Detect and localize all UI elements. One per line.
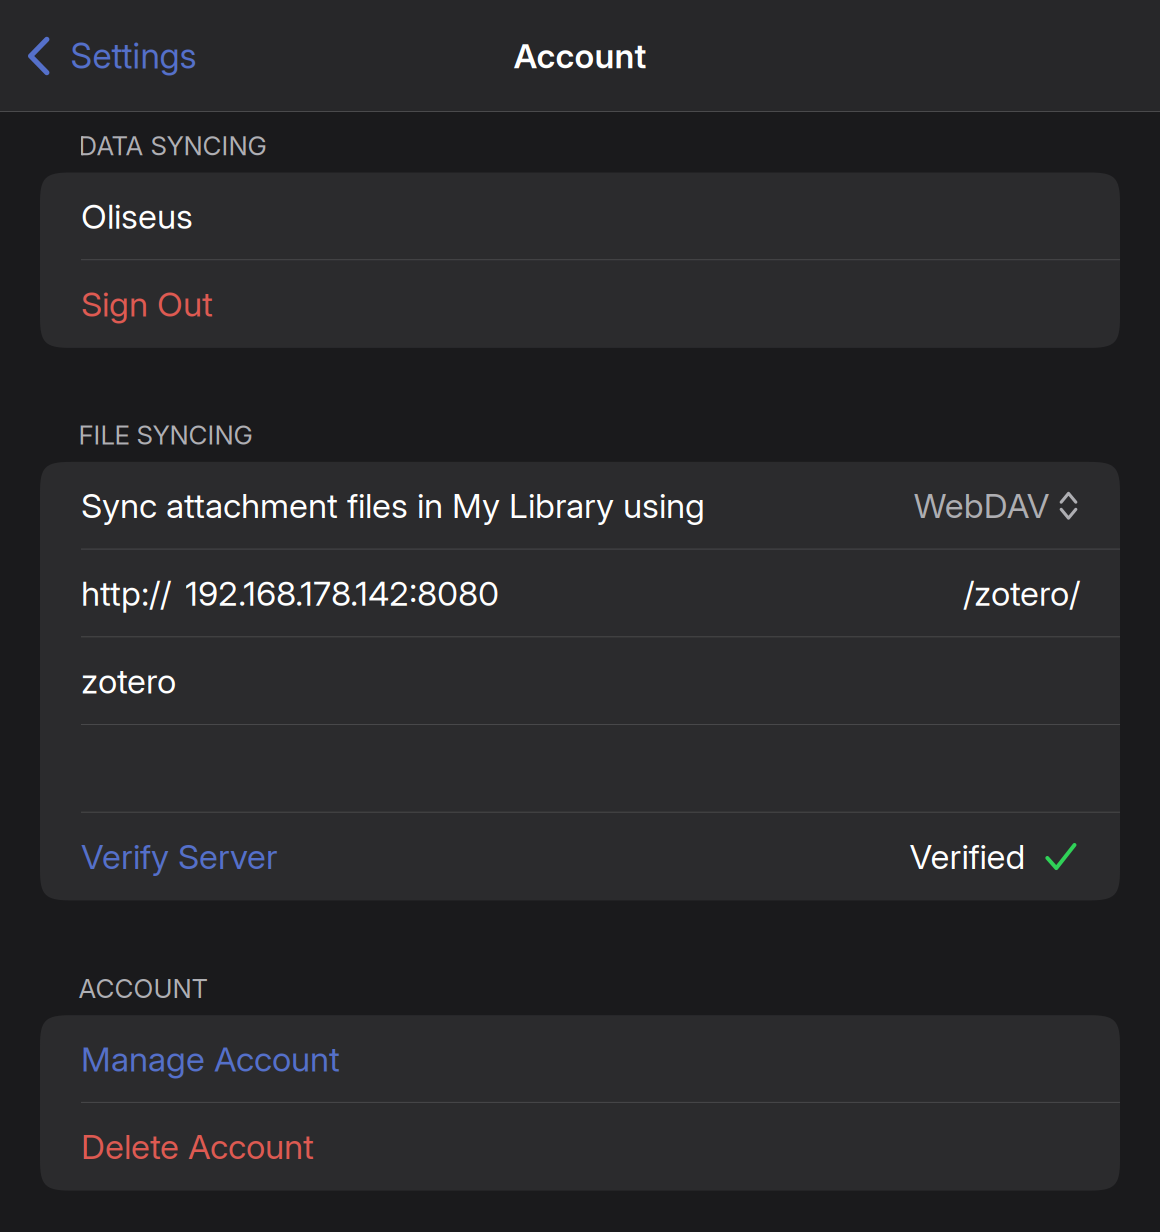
staticText: Sign Out (81, 283, 213, 325)
staticText: 192.168.178.142:8080 (185, 573, 499, 614)
button[interactable]: Delete Account (40, 1103, 1120, 1191)
staticText: http:// (81, 573, 171, 614)
staticText: Settings (70, 35, 196, 77)
staticText: Sync attachment files in My Library usin… (81, 485, 705, 526)
staticText: /zotero/ (963, 573, 1080, 614)
button[interactable]: Verify Server (40, 813, 1120, 900)
staticText: ACCOUNT (78, 973, 208, 1004)
staticText: DATA SYNCING (78, 130, 266, 161)
button[interactable]: zotero (40, 637, 1120, 725)
staticText: Oliseus (81, 196, 193, 237)
button[interactable]: http:// (40, 550, 1120, 637)
staticText: Manage Account (81, 1038, 340, 1080)
staticText: Account (513, 36, 646, 76)
button[interactable]: Manage Account (40, 1015, 1120, 1103)
button[interactable]: Oliseus (40, 172, 1120, 260)
button[interactable]: Settings (0, 0, 214, 112)
button[interactable]: Sign Out (40, 260, 1120, 348)
staticText: zotero (81, 661, 176, 702)
staticText: WebDAV (914, 485, 1050, 526)
staticText: FILE SYNCING (78, 419, 252, 451)
staticText: Verified (909, 836, 1025, 877)
button[interactable]: Sync attachment files in My Library usin… (40, 462, 1120, 550)
staticText: Delete Account (81, 1126, 314, 1167)
staticText: Verify Server (81, 836, 278, 877)
